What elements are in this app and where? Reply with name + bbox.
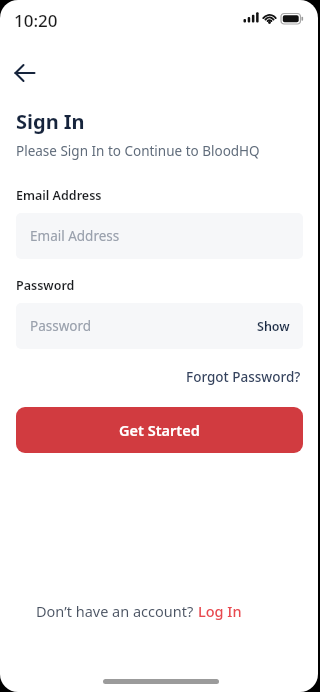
staticText: Password <box>30 317 92 335</box>
button[interactable]: Show <box>257 318 290 335</box>
staticText: Don’t have an account? <box>36 601 198 621</box>
staticText: Show <box>257 318 290 335</box>
staticText: Password <box>16 277 75 294</box>
button[interactable]: Log In <box>198 601 242 621</box>
staticText: Forgot Password? <box>186 368 301 386</box>
button[interactable] <box>5 53 45 93</box>
button[interactable]: Forgot Password? <box>186 368 301 386</box>
staticText: Email Address <box>30 227 120 245</box>
button[interactable]: Email Address <box>16 213 303 259</box>
staticText: Sign In <box>16 108 85 135</box>
staticText: Email Address <box>16 187 102 204</box>
button[interactable]: Get Started <box>16 407 303 453</box>
button[interactable]: Password <box>16 303 303 349</box>
staticText: 10:20 <box>14 9 58 32</box>
staticText: Get Started <box>119 420 200 440</box>
staticText: Log In <box>198 601 242 621</box>
staticText: Please Sign In to Continue to BloodHQ <box>16 142 260 160</box>
